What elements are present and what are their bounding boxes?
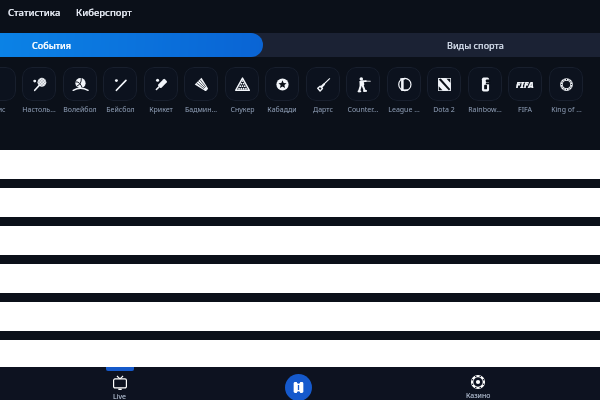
staticText: Статистика — [8, 6, 61, 19]
other: Live — [113, 376, 127, 390]
staticText: Казино — [466, 391, 491, 400]
button[interactable]: Виды спорта — [263, 33, 600, 57]
button[interactable]: Дартс — [306, 67, 340, 115]
button[interactable]: Rainbow… — [468, 67, 502, 115]
staticText: нис — [0, 105, 6, 115]
staticText: Бадмин… — [185, 105, 217, 115]
button[interactable]: Купон — [240, 367, 356, 400]
button[interactable]: Dota 2 — [427, 67, 461, 115]
staticText: События — [32, 39, 72, 51]
button[interactable]: Бейсбол — [103, 67, 137, 115]
other: Купон — [285, 374, 312, 400]
staticText: Dota 2 — [433, 105, 455, 115]
staticText: King of … — [551, 105, 582, 115]
staticText: FIFA — [518, 105, 532, 115]
staticText: Киберспорт — [76, 6, 132, 19]
staticText: Кабадди — [267, 105, 297, 115]
staticText: Настоль… — [22, 105, 56, 115]
staticText: FIFA — [516, 79, 534, 90]
button[interactable]: нис — [0, 67, 16, 115]
staticText: Live — [113, 392, 126, 400]
button[interactable]: Статистика — [7, 2, 62, 23]
staticText: Волейбол — [63, 105, 97, 115]
staticText: League … — [388, 105, 420, 115]
button[interactable]: Live — [60, 367, 179, 400]
button[interactable]: Бадмин… — [184, 67, 218, 115]
staticText: Крикет — [149, 105, 173, 115]
button[interactable]: Киберспорт — [75, 2, 133, 23]
staticText: Counter… — [347, 105, 379, 115]
button[interactable]: League … — [387, 67, 421, 115]
button[interactable]: События — [0, 33, 263, 57]
button[interactable]: Снукер — [225, 67, 259, 115]
staticText: Rainbow… — [468, 105, 502, 115]
button[interactable]: Кабадди — [265, 67, 299, 115]
button[interactable]: FIFA — [508, 67, 542, 115]
staticText: Дартс — [313, 105, 333, 115]
button[interactable]: Настоль… — [22, 67, 56, 115]
staticText: Снукер — [230, 105, 255, 115]
staticText: Бейсбол — [106, 105, 135, 115]
staticText: Виды спорта — [447, 39, 504, 51]
other: Казино — [471, 375, 485, 389]
button[interactable]: King of … — [549, 67, 583, 115]
button[interactable]: Волейбол — [63, 67, 97, 115]
button[interactable]: Крикет — [144, 67, 178, 115]
button[interactable]: Казино — [418, 367, 538, 400]
button[interactable]: Counter… — [346, 67, 380, 115]
